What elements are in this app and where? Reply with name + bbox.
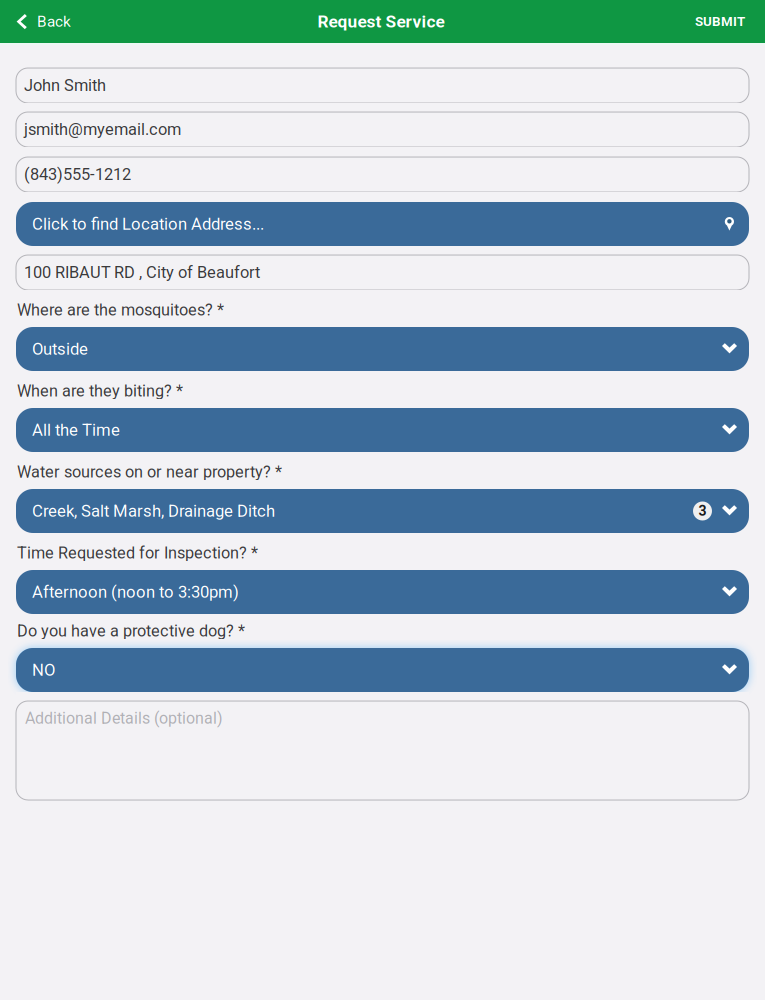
button[interactable]: Click to find Location Address... [16,202,749,246]
button[interactable]: All the Time [16,408,749,452]
button[interactable]: Outside [16,327,749,371]
staticText: Time Requested for Inspection? * [17,543,258,563]
button[interactable]: John Smith [16,68,749,103]
staticText: SUBMIT [695,14,745,29]
staticText: Where are the mosquitoes? * [17,300,224,320]
button[interactable]: SUBMIT [677,0,765,43]
staticText: Request Service [317,11,444,32]
button[interactable]: Afternoon (noon to 3:30pm) [16,570,749,614]
button[interactable]: Creek, Salt Marsh, Drainage Ditch [16,489,749,533]
staticText: jsmith@myemail.com [24,120,181,139]
staticText: Do you have a protective dog? * [17,621,245,641]
button[interactable]: jsmith@myemail.com [16,112,749,147]
staticText: 100 RIBAUT RD , City of Beaufort [24,263,260,282]
staticText: Additional Details (optional) [25,709,223,728]
staticText: NO [32,660,55,680]
button[interactable]: Back [0,0,85,43]
staticText: Outside [32,339,88,359]
staticText: Click to find Location Address... [32,214,264,234]
staticText: When are they biting? * [17,381,183,401]
staticText: John Smith [24,76,106,95]
staticText: Back [37,12,71,30]
button[interactable]: 100 RIBAUT RD , City of Beaufort [16,255,749,290]
staticText: Afternoon (noon to 3:30pm) [32,582,239,602]
staticText: All the Time [32,420,120,440]
staticText: 3 [698,503,706,519]
staticText: Water sources on or near property? * [17,462,282,482]
staticText: (843)555-1212 [24,165,131,184]
button[interactable]: NO [16,648,749,692]
staticText: Creek, Salt Marsh, Drainage Ditch [32,501,275,521]
button[interactable]: Additional Details (optional) [16,701,749,800]
button[interactable]: (843)555-1212 [16,157,749,192]
